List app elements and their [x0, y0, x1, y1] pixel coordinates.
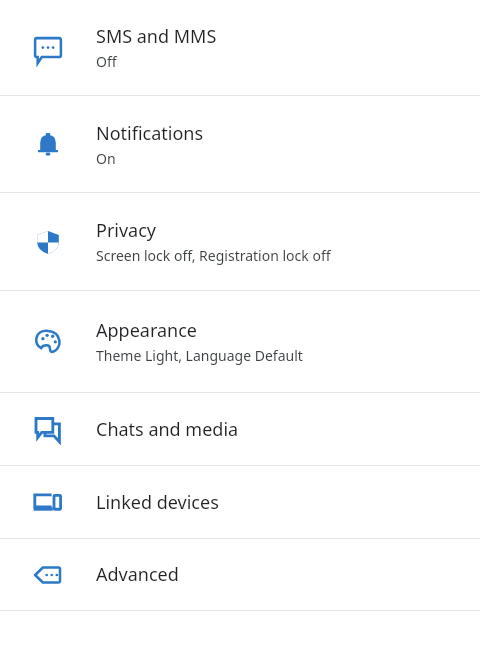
staticText: Advanced	[96, 562, 179, 587]
button[interactable]: Notifications	[0, 96, 480, 192]
staticText: Notifications	[96, 121, 204, 146]
button[interactable]: Privacy	[0, 193, 480, 290]
staticText: Off	[96, 52, 117, 71]
staticText: SMS and MMS	[96, 24, 217, 49]
button[interactable]: Chats and media	[0, 393, 480, 465]
staticText: Appearance	[96, 318, 197, 343]
button[interactable]: Linked devices	[0, 466, 480, 538]
staticText: Theme Light, Language Default	[96, 346, 303, 365]
button[interactable]: Advanced	[0, 539, 480, 610]
staticText: Privacy	[96, 218, 157, 243]
staticText: Chats and media	[96, 417, 239, 442]
button[interactable]: Appearance	[0, 291, 480, 392]
staticText: Screen lock off, Registration lock off	[96, 246, 331, 265]
staticText: On	[96, 149, 116, 168]
button[interactable]: SMS and MMS	[0, 0, 480, 95]
staticText: Linked devices	[96, 490, 219, 515]
